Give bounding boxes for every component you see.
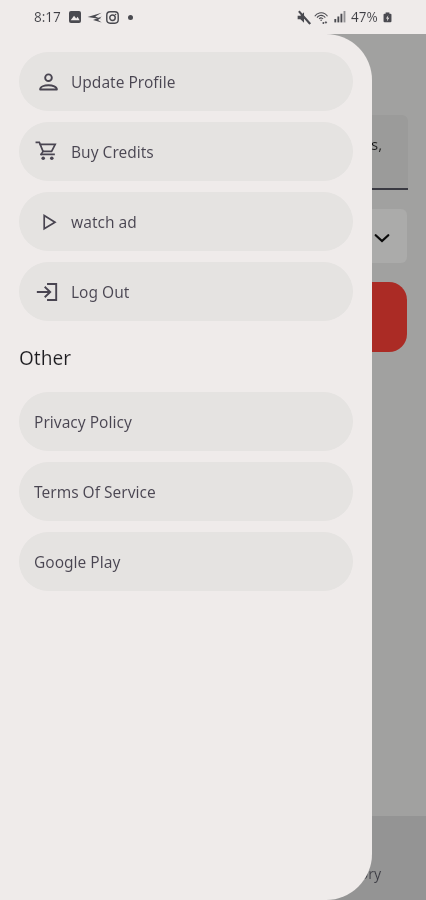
staticText: Google Play <box>34 551 121 572</box>
staticText: Log Out <box>71 281 130 302</box>
button[interactable]: Close navigation drawer <box>372 34 426 900</box>
button[interactable]: watch ad <box>19 192 353 251</box>
staticText: Buy Credits <box>71 141 154 162</box>
staticText: credits, <box>331 134 383 154</box>
staticText: Privacy Policy <box>34 411 132 432</box>
staticText: 47% <box>351 8 378 26</box>
staticText: Update Profile <box>71 71 176 92</box>
staticText: 8:17 <box>34 8 61 26</box>
button[interactable]: Terms Of Service <box>19 462 353 521</box>
button[interactable]: Update Profile <box>19 52 353 111</box>
button[interactable]: Buy Credits <box>19 122 353 181</box>
button[interactable]: Submit <box>300 282 407 352</box>
staticText: watch ad <box>71 211 137 232</box>
button[interactable]: Google Play <box>19 532 353 591</box>
button[interactable]: Log Out <box>19 262 353 321</box>
button[interactable]: Privacy Policy <box>19 392 353 451</box>
staticText: History <box>334 864 382 883</box>
staticText: Other <box>19 345 72 371</box>
staticText: Terms Of Service <box>34 481 156 502</box>
button[interactable]: Select option <box>300 209 407 263</box>
